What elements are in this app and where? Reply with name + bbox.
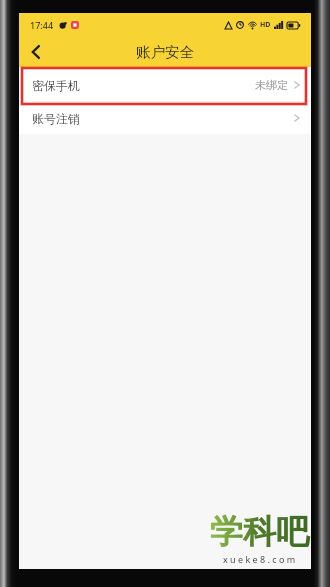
- staticText: 账户安全: [136, 43, 194, 61]
- staticText: 学科吧: [210, 511, 309, 553]
- staticText: 密保手机: [32, 78, 80, 93]
- staticText: 账号注销: [32, 111, 80, 126]
- staticText: 17:44: [30, 19, 54, 31]
- staticText: HD: [260, 20, 271, 30]
- staticText: x u e k e 8 . c o m: [223, 553, 296, 565]
- button[interactable]: 账号注销: [19, 102, 311, 134]
- button[interactable]: Back: [19, 36, 53, 67]
- button[interactable]: 密保手机: [19, 69, 311, 101]
- staticText: 未绑定: [255, 78, 288, 92]
